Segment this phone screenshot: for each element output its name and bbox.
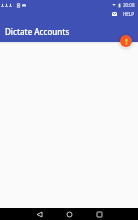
button[interactable]: Record [120, 35, 132, 47]
button[interactable]: Messages [109, 9, 119, 19]
button[interactable]: Recent apps [93, 208, 105, 220]
staticText: HELP [123, 11, 135, 17]
button[interactable]: Home [63, 208, 75, 220]
button[interactable]: Back [33, 208, 45, 220]
button[interactable]: HELP [121, 9, 137, 19]
staticText: 20:08 [123, 2, 135, 8]
staticText: Dictate Accounts [5, 26, 70, 37]
